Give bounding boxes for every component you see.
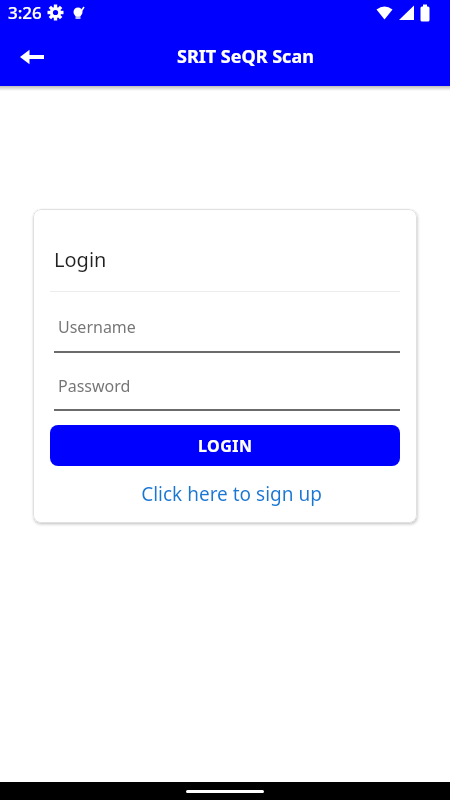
button[interactable]: Click here to sign up [141, 481, 322, 507]
staticText: Password [58, 375, 131, 397]
button[interactable]: LOGIN [50, 425, 400, 466]
staticText: SRIT SeQR Scan [177, 44, 314, 69]
staticText: Username [58, 316, 136, 338]
staticText: Click here to sign up [141, 481, 322, 507]
button[interactable] [12, 37, 52, 77]
staticText: 3:26 [8, 1, 42, 24]
staticText: Login [54, 246, 107, 273]
staticText: LOGIN [198, 435, 253, 457]
